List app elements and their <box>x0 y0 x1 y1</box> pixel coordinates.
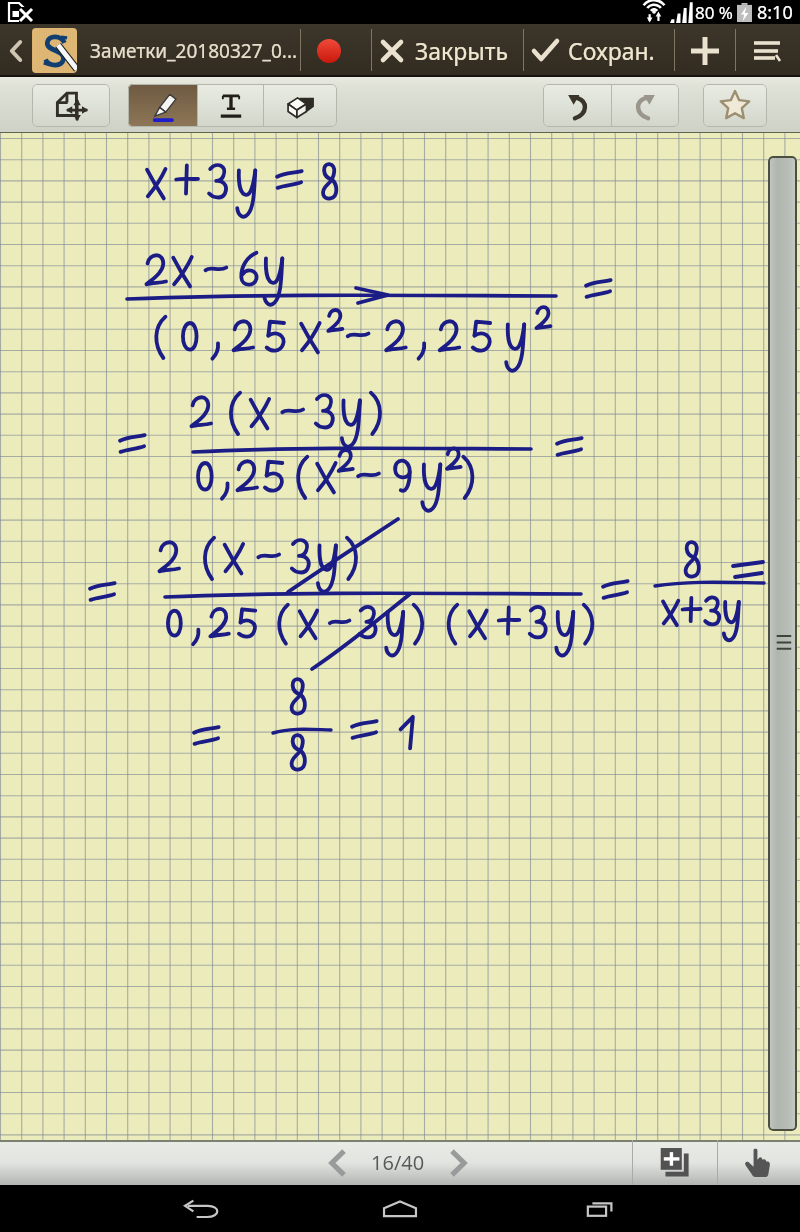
button[interactable]: Menu <box>737 24 797 77</box>
button[interactable]: Eraser <box>264 84 337 127</box>
staticText: 80 % <box>695 1 733 24</box>
button[interactable]: Previous page <box>311 1140 363 1185</box>
button[interactable]: Favorite <box>703 84 767 127</box>
button[interactable]: Back <box>2 24 30 77</box>
button[interactable]: Hand tool <box>718 1140 800 1185</box>
staticText: Сохран. <box>568 35 655 66</box>
button[interactable]: Pen <box>128 84 197 127</box>
button[interactable]: Next page <box>433 1140 485 1185</box>
button[interactable]: Redo <box>612 84 679 127</box>
staticText: 16/40 <box>371 1149 425 1176</box>
button[interactable]: Recents <box>550 1185 650 1232</box>
other: Scroll <box>768 156 797 1131</box>
button[interactable]: Add <box>676 24 734 77</box>
button[interactable]: Home <box>350 1185 450 1232</box>
button[interactable]: Record <box>306 24 352 77</box>
staticText: Заметки_20180327_0... <box>90 38 298 64</box>
button[interactable]: Add page <box>633 1140 717 1185</box>
button[interactable]: Select <box>32 84 110 127</box>
button[interactable]: Закрыть <box>372 24 516 77</box>
staticText: 8:10 <box>757 0 793 24</box>
staticText: Закрыть <box>415 35 508 66</box>
button[interactable]: Сохран. <box>526 24 661 77</box>
button[interactable]: Text <box>198 84 263 127</box>
button[interactable]: S Note <box>32 28 77 73</box>
button[interactable]: Undo <box>543 84 611 127</box>
button[interactable]: Back <box>153 1185 253 1232</box>
